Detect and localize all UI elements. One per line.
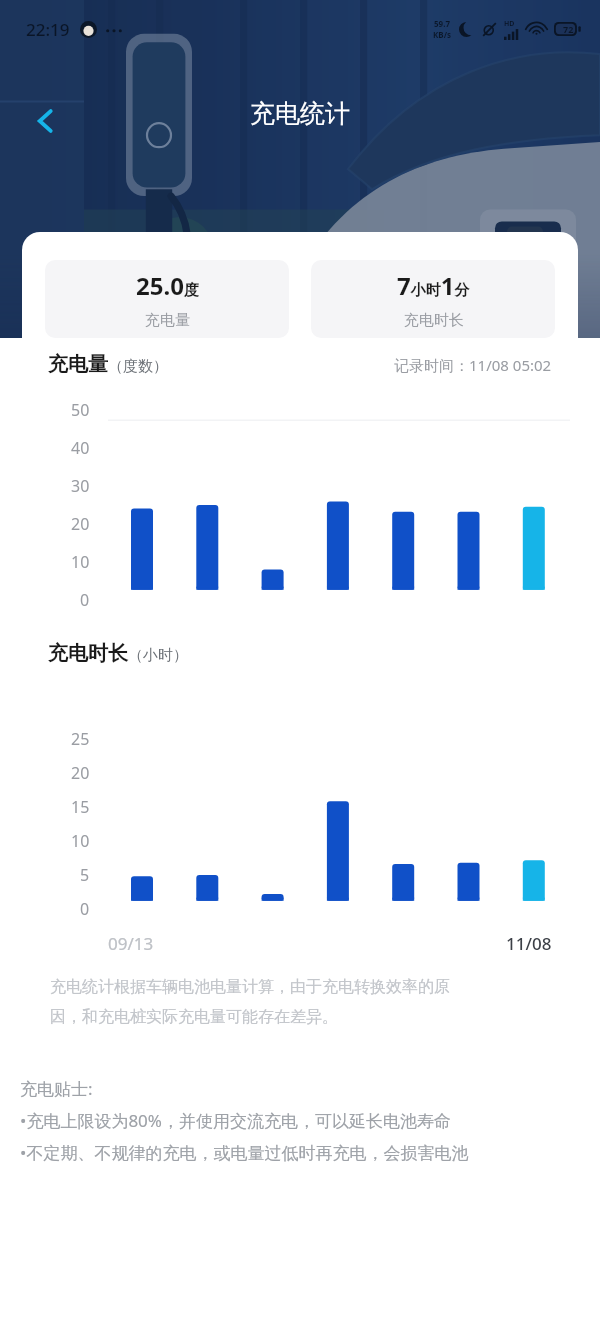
staticText: •不定期、不规律的充电，或电量过低时再充电，会损害电池 xyxy=(20,1141,469,1164)
staticText: 10 xyxy=(71,551,90,573)
staticText: 记录时间：11/08 05:02 xyxy=(394,355,552,375)
staticText: 0 xyxy=(80,589,90,611)
staticText: 充电时长（小时） xyxy=(48,641,188,666)
staticText: 40 xyxy=(71,437,90,459)
staticText: •充电上限设为80%，并使用交流充电，可以延长电池寿命 xyxy=(20,1109,451,1132)
staticText: 25.0度 xyxy=(136,269,199,302)
staticText: 59.7 xyxy=(434,18,450,29)
staticText: 充电统计 xyxy=(250,98,350,129)
staticText: 25 xyxy=(71,728,90,750)
staticText: KB/s xyxy=(433,29,451,40)
button[interactable]: Back xyxy=(20,95,72,147)
staticText: 50 xyxy=(71,399,90,421)
button[interactable]: 25.0度 xyxy=(45,260,289,338)
staticText: 10 xyxy=(71,830,90,852)
staticText: 20 xyxy=(71,762,90,784)
staticText: 15 xyxy=(71,796,90,818)
staticText: 0 xyxy=(80,898,90,920)
button[interactable]: 7小时1分 xyxy=(311,260,555,338)
staticText: HD xyxy=(504,19,515,29)
staticText: 20 xyxy=(71,513,90,535)
staticText: 因，和充电桩实际充电量可能存在差异。 xyxy=(50,1007,338,1027)
staticText: 22:19 xyxy=(26,18,70,41)
staticText: 充电量（度数） xyxy=(48,352,168,377)
staticText: 09/13 xyxy=(108,932,154,955)
staticText: 充电量 xyxy=(145,311,190,330)
staticText: 7小时1分 xyxy=(397,269,470,302)
staticText: 充电时长 xyxy=(404,311,464,330)
staticText: 5 xyxy=(80,864,90,886)
staticText: 72 xyxy=(563,23,574,35)
staticText: 充电贴士: xyxy=(20,1077,93,1100)
staticText: 30 xyxy=(71,475,90,497)
staticText: 11/08 xyxy=(506,932,552,955)
staticText: 充电统计根据车辆电池电量计算，由于充电转换效率的原 xyxy=(50,977,450,997)
